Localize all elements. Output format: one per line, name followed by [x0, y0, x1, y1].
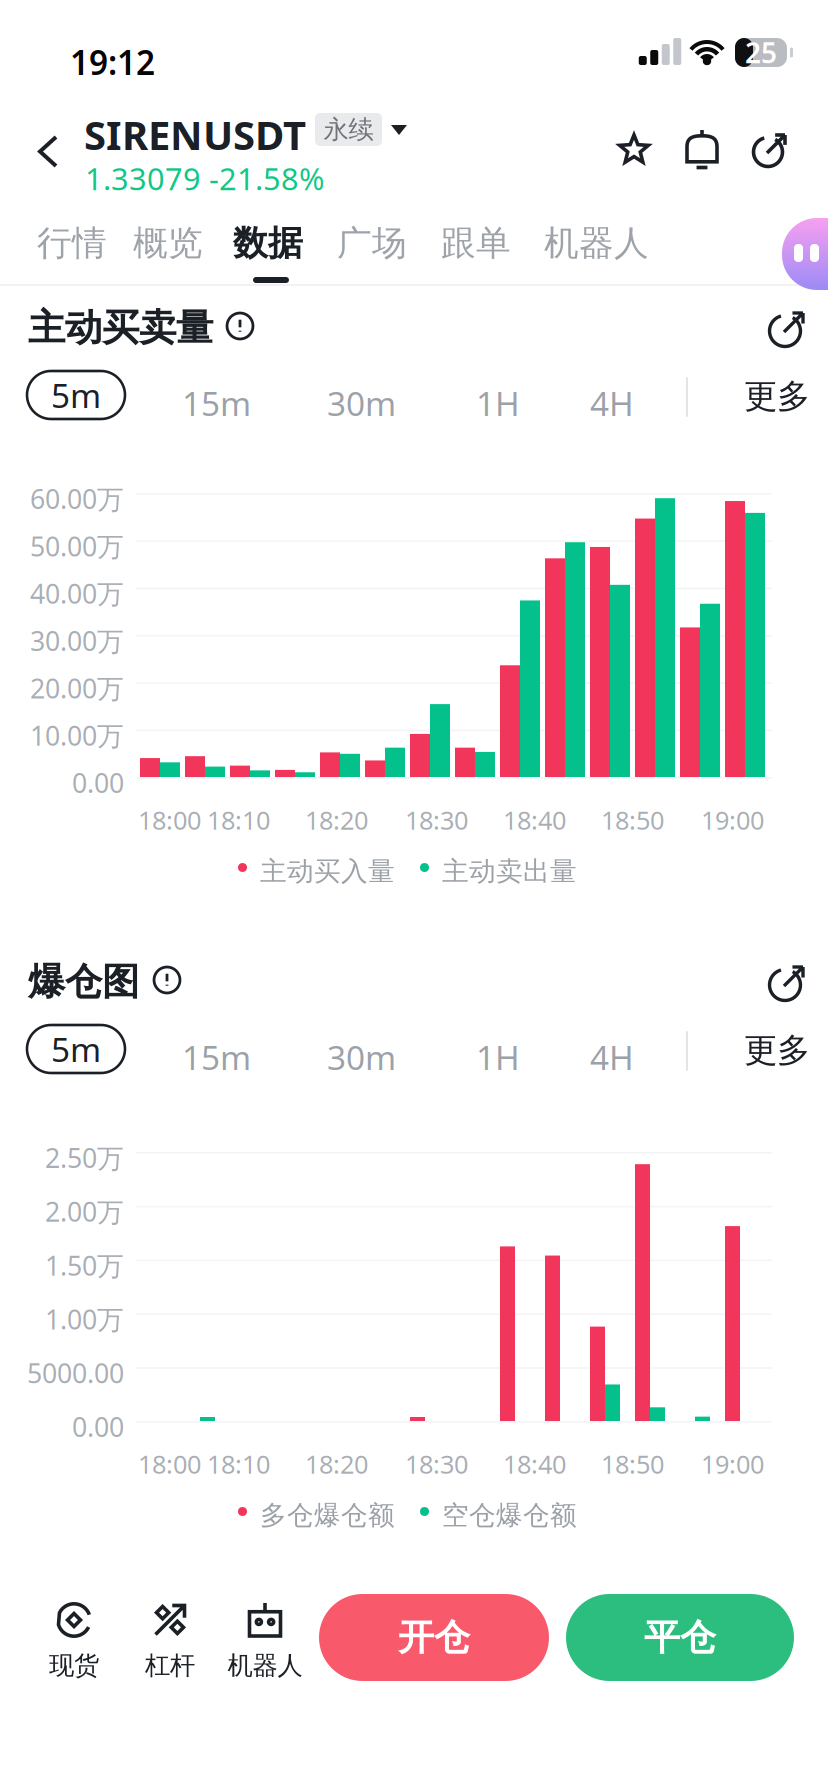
- staticText: 行情: [37, 222, 107, 265]
- staticText: 机器人: [227, 1650, 302, 1681]
- staticText: 18:00: [138, 803, 201, 837]
- staticText: 18:10: [207, 1447, 270, 1481]
- button[interactable]: Favorite: [604, 120, 664, 178]
- staticText: 0.00: [72, 1409, 124, 1444]
- button[interactable]: 行情: [29, 212, 115, 275]
- button[interactable]: 概览: [125, 212, 211, 275]
- button[interactable]: 现货: [32, 1602, 116, 1681]
- staticText: 广场: [337, 222, 407, 265]
- button[interactable]: 平仓: [566, 1594, 794, 1681]
- staticText: 0.00: [72, 765, 124, 800]
- staticText: 18:10: [207, 803, 270, 837]
- staticText: 18:20: [305, 803, 368, 837]
- staticText: 40.00万: [30, 576, 124, 611]
- button[interactable]: 30m: [327, 381, 396, 425]
- staticText: 50.00万: [30, 528, 124, 564]
- staticText: 开仓: [398, 1615, 470, 1660]
- button[interactable]: 数据: [225, 212, 311, 275]
- button[interactable]: 5m: [27, 1025, 125, 1073]
- staticText: 30m: [327, 1035, 396, 1079]
- button[interactable]: 机器人: [536, 212, 657, 275]
- staticText: 30.00万: [30, 623, 124, 658]
- staticText: 2.00万: [45, 1194, 124, 1229]
- staticText: 4H: [590, 381, 634, 425]
- staticText: 19:00: [701, 803, 764, 837]
- button[interactable]: Back: [19, 116, 77, 187]
- staticText: 18:40: [503, 803, 566, 837]
- staticText: 多仓爆仓额: [260, 1499, 395, 1532]
- staticText: 10.00万: [30, 718, 124, 753]
- button[interactable]: 更多: [744, 1030, 810, 1071]
- button[interactable]: 4H: [590, 381, 634, 425]
- button[interactable]: 4H: [590, 1035, 634, 1079]
- button[interactable]: 1H: [476, 381, 520, 425]
- staticText: 18:30: [405, 1447, 468, 1481]
- button[interactable]: 开仓: [319, 1594, 549, 1681]
- staticText: 空仓爆仓额: [442, 1499, 577, 1532]
- button[interactable]: 15m: [182, 381, 251, 425]
- staticText: 19:12: [70, 40, 155, 84]
- staticText: 爆仓图: [28, 959, 139, 1005]
- staticText: 18:50: [601, 803, 664, 837]
- staticText: 18:20: [305, 1447, 368, 1481]
- button[interactable]: 广场: [329, 212, 415, 275]
- staticText: 4H: [590, 1035, 634, 1079]
- staticText: 概览: [133, 222, 203, 265]
- button[interactable]: 更多: [744, 376, 810, 417]
- staticText: 更多: [744, 376, 810, 417]
- button[interactable]: 30m: [327, 1035, 396, 1079]
- button[interactable]: Share: [740, 120, 800, 180]
- button[interactable]: 1H: [476, 1035, 520, 1079]
- staticText: 更多: [744, 1030, 810, 1071]
- staticText: 主动买入量: [260, 855, 395, 888]
- staticText: 机器人: [544, 222, 649, 265]
- staticText: 杠杆: [145, 1650, 195, 1681]
- staticText: 20.00万: [30, 670, 124, 706]
- staticText: 现货: [49, 1650, 99, 1681]
- staticText: 主动卖出量: [442, 855, 577, 888]
- staticText: 18:40: [503, 1447, 566, 1481]
- button[interactable]: 5m: [27, 371, 125, 419]
- staticText: 永续: [323, 114, 373, 145]
- staticText: 1.50万: [45, 1248, 124, 1283]
- staticText: 18:50: [601, 1447, 664, 1481]
- staticText: 数据: [233, 222, 303, 265]
- staticText: 1H: [476, 1035, 520, 1079]
- staticText: 1H: [476, 381, 520, 425]
- staticText: 1.33079 -21.58%: [85, 158, 324, 199]
- button[interactable]: Expand chart: [768, 964, 806, 1002]
- staticText: 2.50万: [45, 1140, 124, 1175]
- staticText: SIRENUSDT: [84, 108, 306, 161]
- button[interactable]: Alerts: [674, 117, 730, 181]
- button[interactable]: 杠杆: [128, 1602, 212, 1681]
- button[interactable]: Expand chart: [768, 310, 806, 348]
- staticText: 18:30: [405, 803, 468, 837]
- staticText: 30m: [327, 381, 396, 425]
- staticText: 跟单: [441, 222, 511, 265]
- staticText: 18:00: [138, 1447, 201, 1481]
- staticText: 1.00万: [45, 1301, 124, 1337]
- button[interactable]: AI assistant: [782, 218, 828, 290]
- staticText: 5m: [51, 373, 101, 417]
- staticText: 15m: [182, 1035, 251, 1079]
- staticText: 19:00: [701, 1447, 764, 1481]
- button[interactable]: 跟单: [433, 212, 519, 275]
- button[interactable]: 15m: [182, 1035, 251, 1079]
- button[interactable]: 机器人: [217, 1602, 313, 1681]
- staticText: 5000.00: [27, 1355, 124, 1391]
- staticText: 25: [745, 34, 777, 71]
- staticText: 主动买卖量: [28, 305, 213, 351]
- staticText: 15m: [182, 381, 251, 425]
- staticText: 60.00万: [30, 481, 124, 516]
- staticText: 平仓: [644, 1615, 716, 1660]
- staticText: 5m: [51, 1027, 101, 1071]
